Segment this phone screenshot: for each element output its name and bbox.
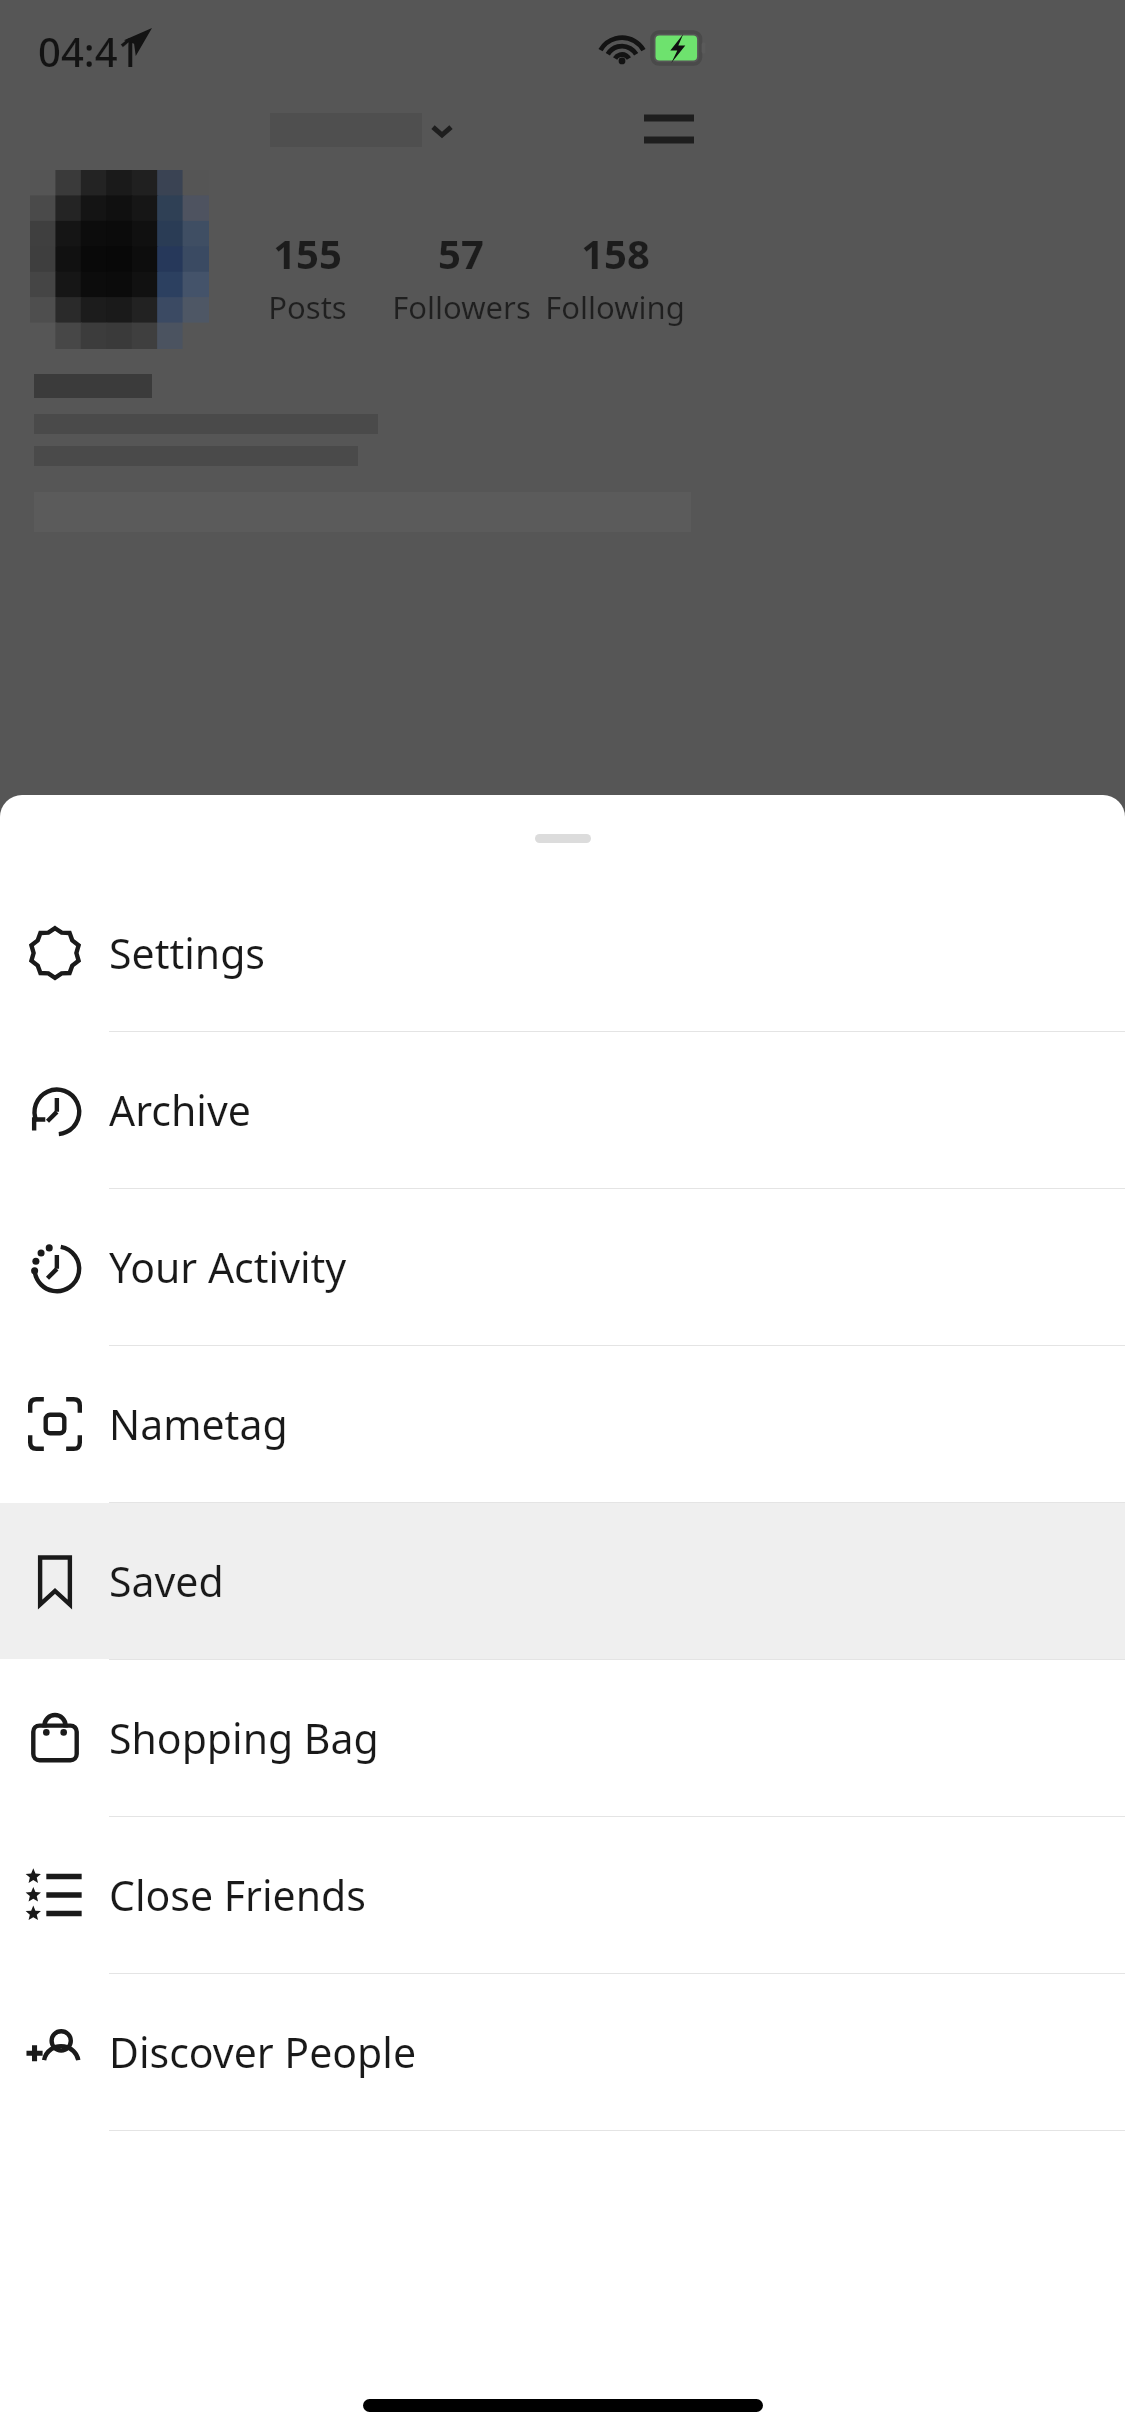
staticText: Shopping Bag xyxy=(109,1710,379,1766)
button[interactable]: Your Activity xyxy=(0,1189,1125,1345)
button[interactable]: Discover People xyxy=(0,1974,1125,2130)
button[interactable]: Settings xyxy=(0,875,1125,1031)
staticText: Discover People xyxy=(109,2024,417,2080)
staticText: Nametag xyxy=(109,1396,288,1452)
staticText: Posts xyxy=(268,286,347,328)
staticText: 04:41 xyxy=(38,24,141,78)
button[interactable]: Nametag xyxy=(0,1346,1125,1502)
staticText: Settings xyxy=(109,925,266,981)
button[interactable]: Saved xyxy=(0,1503,1125,1659)
button[interactable]: Archive xyxy=(0,1032,1125,1188)
staticText: 57 xyxy=(438,226,484,280)
button[interactable]: 158 xyxy=(505,226,725,328)
staticText: Following xyxy=(545,286,685,328)
staticText: Close Friends xyxy=(109,1867,366,1923)
staticText: Followers xyxy=(392,286,531,328)
staticText: Your Activity xyxy=(109,1239,347,1295)
staticText: 158 xyxy=(581,226,650,280)
staticText: Saved xyxy=(109,1553,224,1609)
button[interactable]: Shopping Bag xyxy=(0,1660,1125,1816)
button[interactable]: Menu xyxy=(632,96,706,160)
button[interactable]: 155 xyxy=(197,226,417,328)
button[interactable]: 57 xyxy=(351,226,571,328)
staticText: Archive xyxy=(109,1082,251,1138)
staticText: 155 xyxy=(273,226,342,280)
button[interactable]: Close Friends xyxy=(0,1817,1125,1973)
